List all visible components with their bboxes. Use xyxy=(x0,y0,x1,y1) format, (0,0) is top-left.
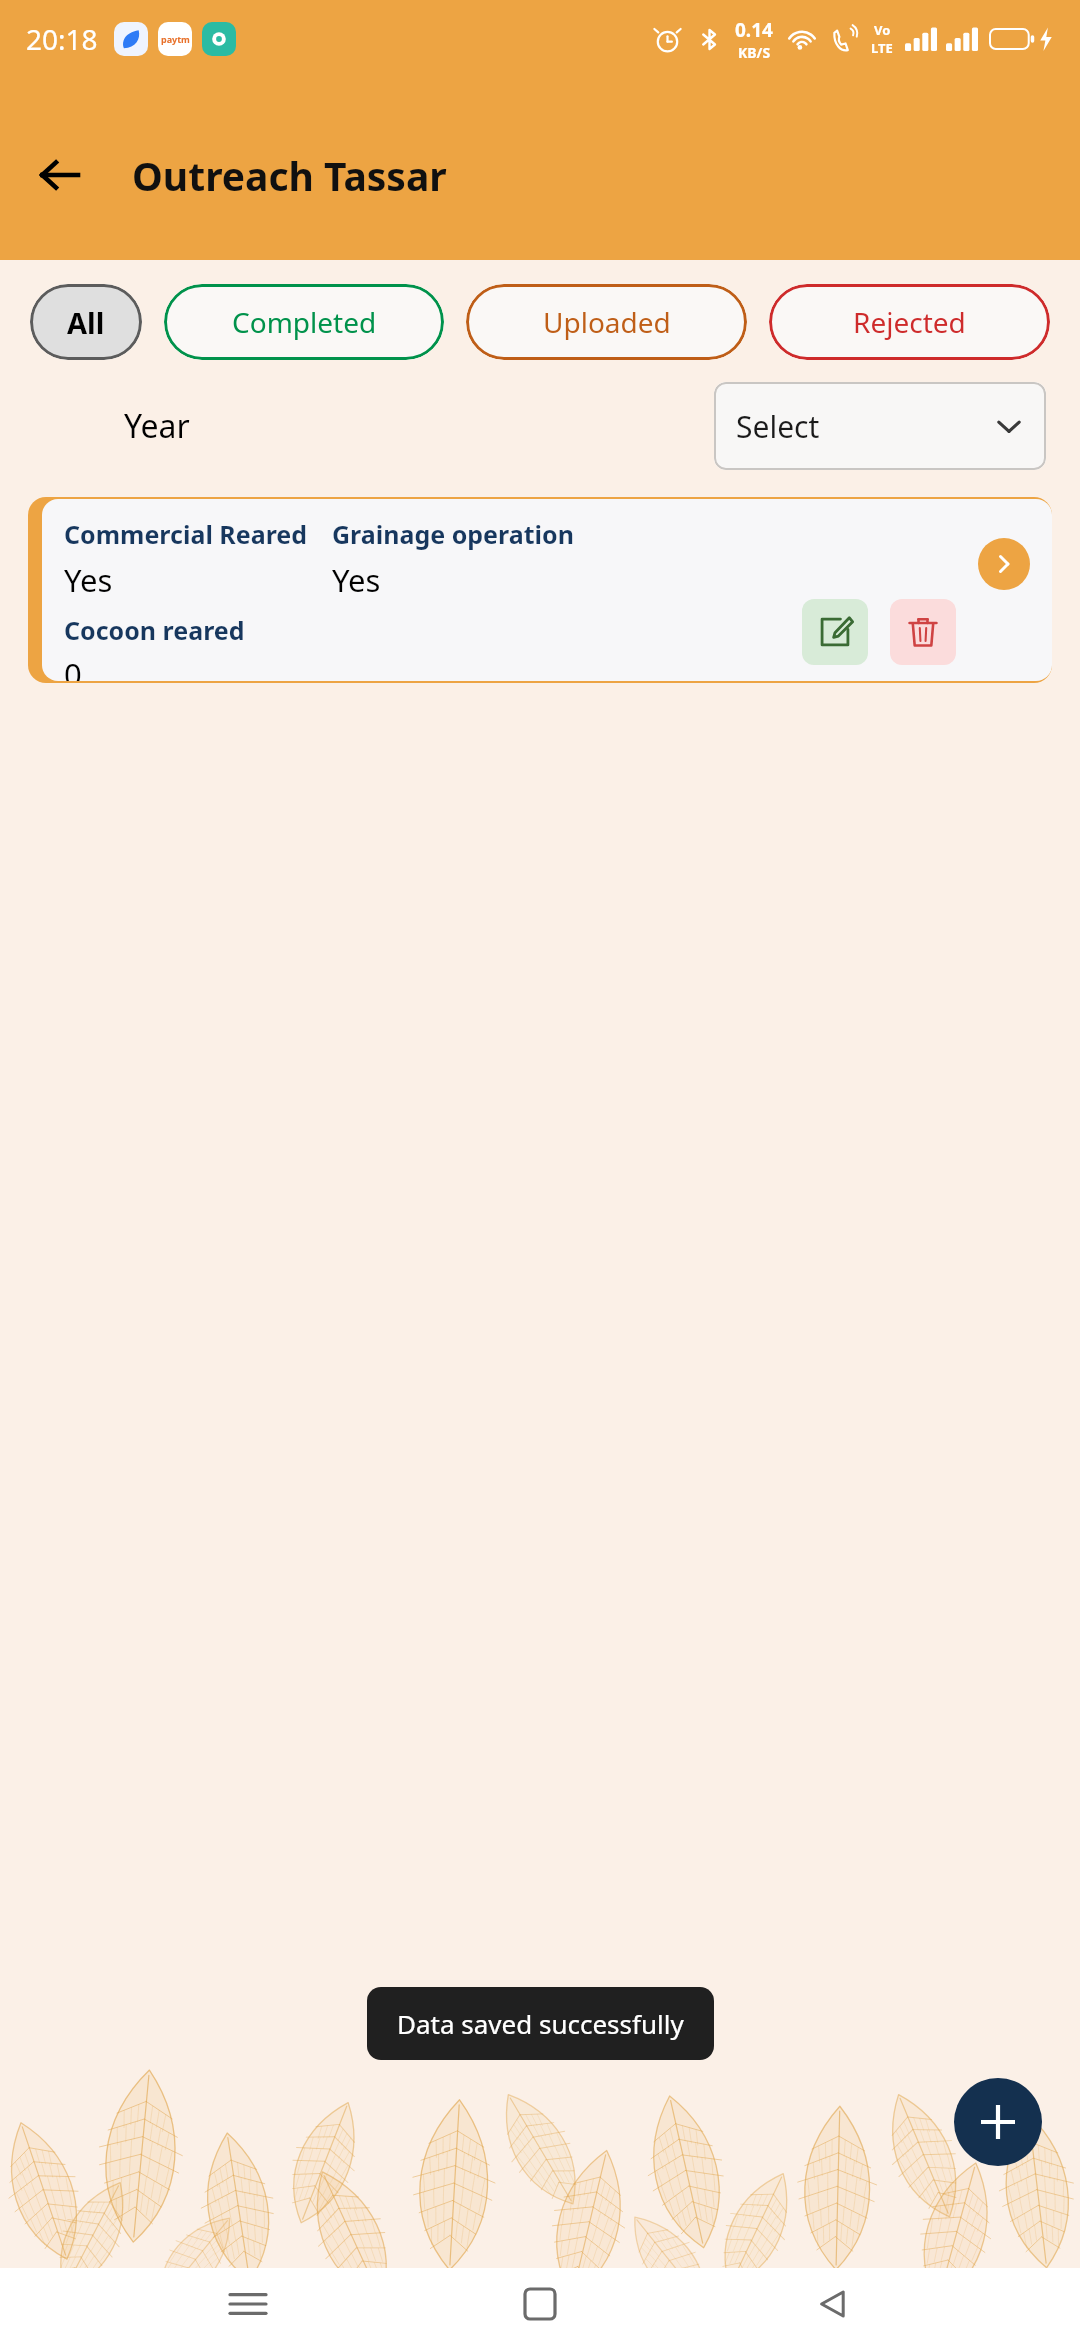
staticText: Data saved successfully xyxy=(397,2006,684,2041)
button[interactable]: Delete xyxy=(890,599,956,665)
button[interactable]: Edit xyxy=(802,599,868,665)
button[interactable]: Back xyxy=(22,138,96,212)
staticText: Uploaded xyxy=(543,303,671,341)
staticText: Select xyxy=(736,406,820,447)
staticText: Outreach Tassar xyxy=(132,149,447,202)
button[interactable]: Back xyxy=(788,2268,878,2340)
staticText: 20:18 xyxy=(26,20,98,58)
staticText: Yes xyxy=(64,559,113,601)
staticText: Completed xyxy=(232,303,377,341)
staticText: KB/S xyxy=(738,43,771,62)
staticText: All xyxy=(67,303,105,342)
staticText: paytm xyxy=(161,33,190,45)
button[interactable]: Recent apps xyxy=(203,2268,293,2340)
staticText: Commercial Reared xyxy=(64,517,308,551)
button[interactable]: All xyxy=(30,284,142,360)
staticText: Rejected xyxy=(853,303,966,341)
staticText: 0.14 xyxy=(735,17,773,43)
staticText: Vo xyxy=(874,21,891,39)
button[interactable]: Open details xyxy=(978,538,1030,590)
button[interactable]: Rejected xyxy=(769,284,1050,360)
staticText: Yes xyxy=(332,559,381,601)
button[interactable]: Add new record xyxy=(954,2078,1042,2166)
staticText: Cocoon reared xyxy=(64,613,245,647)
button[interactable]: Select xyxy=(714,382,1046,470)
staticText: Year xyxy=(124,404,190,448)
staticText: 0 xyxy=(64,653,82,681)
button[interactable]: Home xyxy=(495,2268,585,2340)
staticText: LTE xyxy=(871,39,893,57)
button[interactable]: Uploaded xyxy=(466,284,747,360)
staticText: Grainage operation xyxy=(332,517,574,551)
button[interactable]: Completed xyxy=(164,284,444,360)
button[interactable]: Commercial Reared xyxy=(42,499,1052,681)
